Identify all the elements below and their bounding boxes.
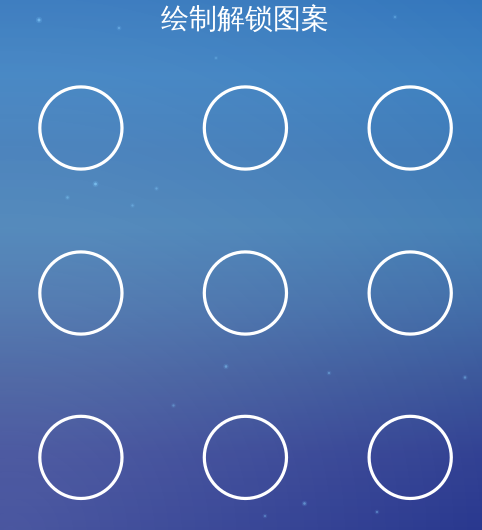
button[interactable]: Pattern dot 5: [192, 240, 298, 346]
staticText: 绘制解锁图案: [161, 1, 329, 36]
button[interactable]: Pattern dot 8: [192, 404, 298, 510]
button[interactable]: Pattern dot 1: [28, 75, 134, 181]
button[interactable]: Pattern dot 9: [357, 404, 463, 510]
button[interactable]: Pattern dot 4: [28, 240, 134, 346]
button[interactable]: Pattern dot 3: [357, 75, 463, 181]
button[interactable]: Pattern dot 6: [357, 240, 463, 346]
button[interactable]: Pattern dot 7: [28, 404, 134, 510]
button[interactable]: Pattern dot 2: [192, 75, 298, 181]
